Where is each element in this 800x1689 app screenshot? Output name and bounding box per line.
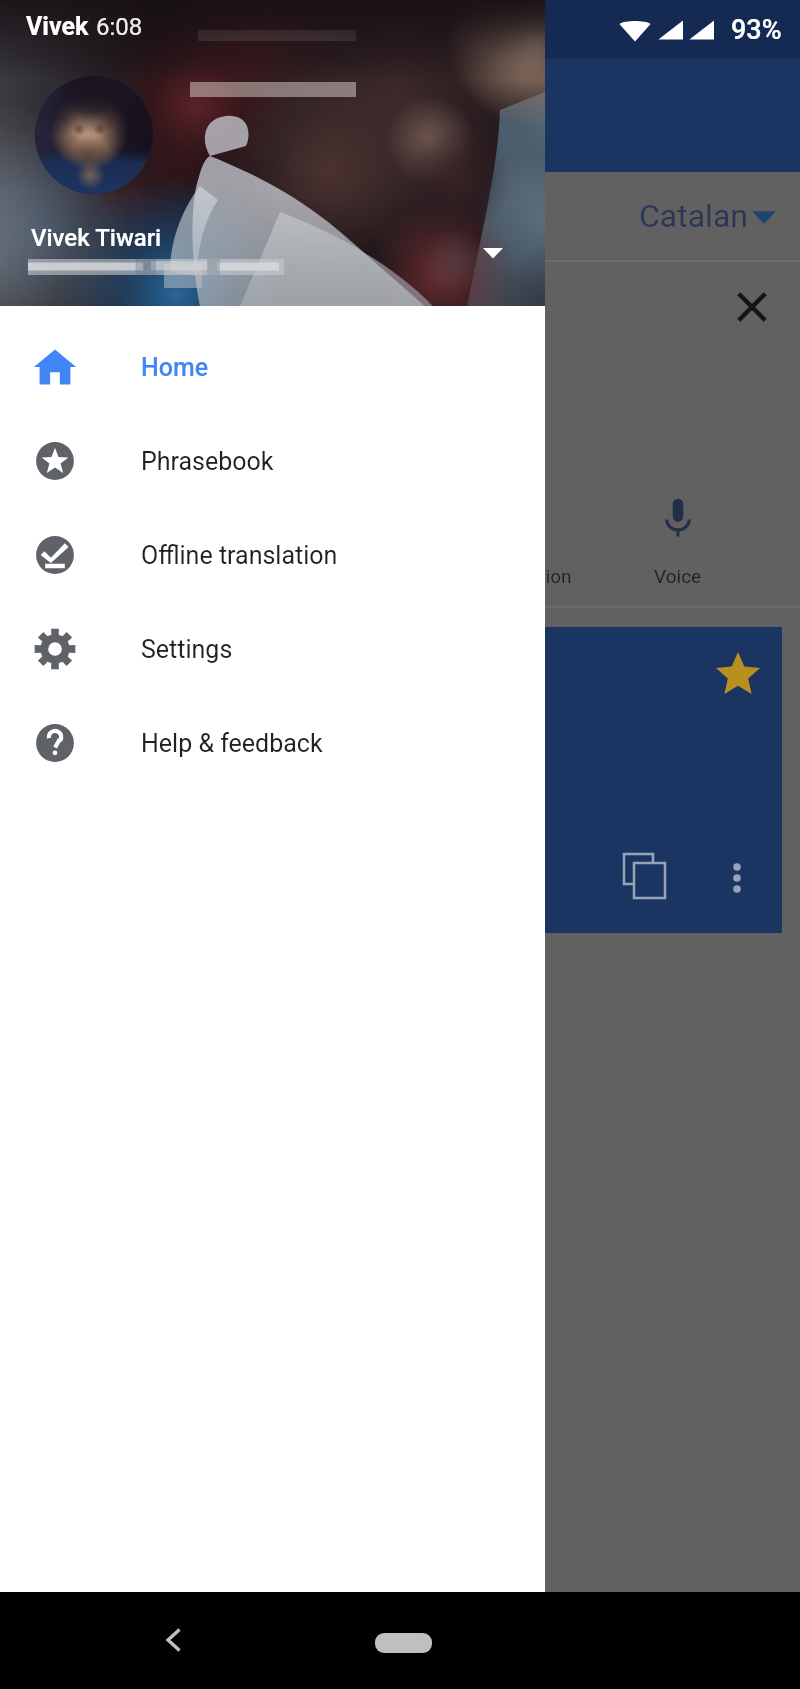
staticText: 93% — [731, 14, 782, 46]
button[interactable]: Help & feedback — [0, 696, 545, 790]
button[interactable]: Copy — [620, 851, 670, 901]
staticText: Phrasebook — [141, 447, 274, 476]
button[interactable]: Catalan — [639, 197, 776, 235]
button[interactable]: Back — [151, 1617, 197, 1663]
button[interactable]: Voice — [654, 496, 702, 587]
staticText: Voice — [654, 565, 702, 587]
button[interactable]: Favorite — [0, 627, 782, 933]
button[interactable]: Home — [0, 320, 545, 414]
button[interactable]: Offline translation — [0, 508, 545, 602]
button[interactable]: Favorite — [709, 645, 767, 703]
button[interactable]: Settings — [0, 602, 545, 696]
staticText: Vivek — [26, 12, 89, 41]
button[interactable]: Profile photo — [35, 76, 153, 194]
button[interactable]: Handwriting — [274, 496, 377, 587]
staticText: 6:08 — [96, 13, 143, 41]
button[interactable]: Profile photo — [0, 0, 545, 306]
button[interactable]: Phrasebook — [0, 414, 545, 508]
button[interactable]: Camera — [126, 496, 192, 587]
button[interactable]: Conversation — [460, 496, 572, 587]
staticText: Vivek Tiwari — [31, 224, 162, 252]
button[interactable]: Clear — [730, 285, 774, 329]
staticText: Settings — [141, 635, 233, 664]
staticText: Home — [141, 353, 209, 382]
staticText: Offline translation — [141, 541, 338, 570]
staticText: Help & feedback — [141, 729, 323, 758]
staticText: Catalan — [639, 197, 748, 235]
button[interactable]: More options — [714, 855, 760, 901]
button[interactable]: Switch account — [483, 242, 503, 262]
staticText: Conversation — [460, 565, 572, 587]
button[interactable]: Home — [375, 1633, 432, 1653]
